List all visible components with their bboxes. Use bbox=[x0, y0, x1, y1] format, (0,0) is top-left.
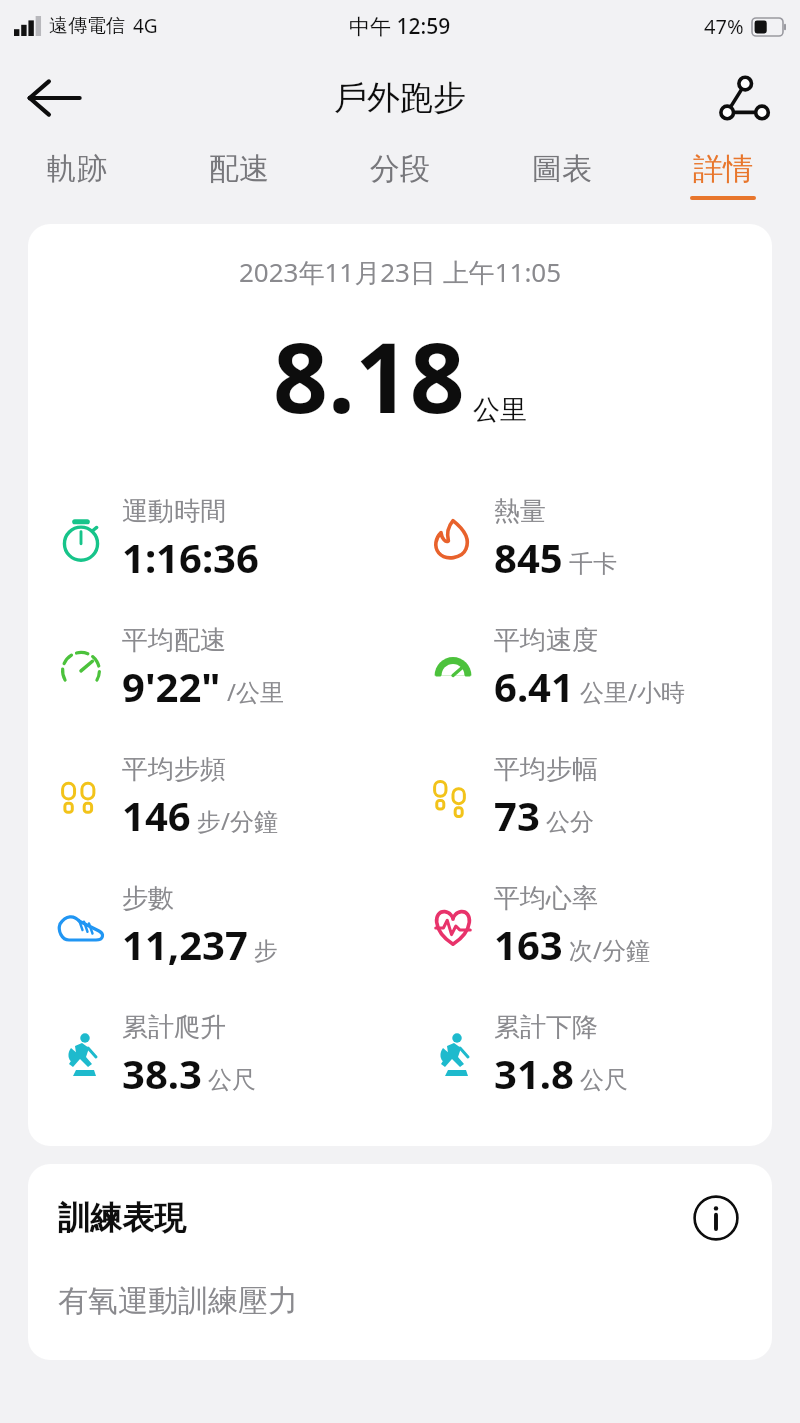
staticText: 累計爬升 bbox=[122, 1011, 226, 1044]
button[interactable]: 配速 bbox=[196, 144, 282, 206]
button[interactable]: 平均速度 bbox=[400, 604, 772, 733]
button[interactable]: 平均心率 bbox=[400, 862, 772, 991]
staticText: 步/分鐘 bbox=[197, 804, 278, 837]
button[interactable]: 平均配速 bbox=[28, 604, 400, 733]
staticText: 累計下降 bbox=[494, 1011, 598, 1044]
button[interactable]: 熱量 bbox=[400, 475, 772, 604]
staticText: 11,237 bbox=[122, 917, 248, 971]
staticText: 平均步幅 bbox=[494, 753, 598, 786]
staticText: 戶外跑步 bbox=[334, 77, 466, 119]
staticText: /公里 bbox=[227, 675, 284, 708]
staticText: 熱量 bbox=[494, 495, 546, 528]
staticText: 平均步頻 bbox=[122, 753, 226, 786]
staticText: 遠傳電信 bbox=[49, 14, 125, 38]
staticText: 38.3 bbox=[122, 1046, 202, 1100]
staticText: 4G bbox=[133, 13, 158, 39]
staticText: 訓練表現 bbox=[58, 1198, 186, 1238]
staticText: 2023年11月23日 上午11:05 bbox=[28, 254, 772, 290]
staticText: 公里/小時 bbox=[580, 675, 685, 708]
staticText: 9'22" bbox=[122, 659, 221, 713]
button[interactable]: 累計下降 bbox=[400, 991, 772, 1120]
staticText: 分段 bbox=[370, 150, 430, 188]
staticText: 146 bbox=[122, 788, 191, 842]
staticText: 163 bbox=[494, 917, 563, 971]
button[interactable]: 步數 bbox=[28, 862, 400, 991]
staticText: 公分 bbox=[546, 807, 594, 837]
staticText: 次/分鐘 bbox=[569, 933, 650, 966]
staticText: 軌跡 bbox=[47, 150, 107, 188]
button[interactable]: 平均步頻 bbox=[28, 733, 400, 862]
staticText: 平均心率 bbox=[494, 882, 598, 915]
button[interactable]: 圖表 bbox=[519, 144, 605, 206]
staticText: 千卡 bbox=[569, 549, 617, 579]
button[interactable]: 平均步幅 bbox=[400, 733, 772, 862]
staticText: 運動時間 bbox=[122, 495, 226, 528]
button[interactable]: 運動時間 bbox=[28, 475, 400, 604]
button[interactable]: 詳情 bbox=[680, 144, 766, 206]
staticText: 公尺 bbox=[580, 1065, 628, 1095]
staticText: 平均配速 bbox=[122, 624, 226, 657]
button[interactable]: Info bbox=[690, 1192, 742, 1244]
staticText: 8.18 bbox=[273, 310, 465, 441]
staticText: 配速 bbox=[209, 150, 269, 188]
button[interactable]: Share bbox=[714, 68, 774, 128]
staticText: 73 bbox=[494, 788, 540, 842]
staticText: 步 bbox=[254, 936, 278, 966]
button[interactable]: 分段 bbox=[357, 144, 443, 206]
button[interactable]: 累計爬升 bbox=[28, 991, 400, 1120]
staticText: 6.41 bbox=[494, 659, 574, 713]
staticText: 詳情 bbox=[693, 150, 753, 188]
staticText: 1:16:36 bbox=[122, 530, 259, 584]
staticText: 平均速度 bbox=[494, 624, 598, 657]
staticText: 31.8 bbox=[494, 1046, 574, 1100]
button[interactable]: Back bbox=[22, 66, 86, 130]
button[interactable]: 軌跡 bbox=[34, 144, 120, 206]
staticText: 公里 bbox=[473, 393, 527, 427]
staticText: 有氧運動訓練壓力 bbox=[58, 1282, 298, 1320]
staticText: 圖表 bbox=[532, 150, 592, 188]
staticText: 47% bbox=[704, 13, 744, 40]
staticText: 中午 12:59 bbox=[349, 12, 451, 41]
staticText: 步數 bbox=[122, 882, 174, 915]
staticText: 公尺 bbox=[208, 1065, 256, 1095]
staticText: 845 bbox=[494, 530, 563, 584]
